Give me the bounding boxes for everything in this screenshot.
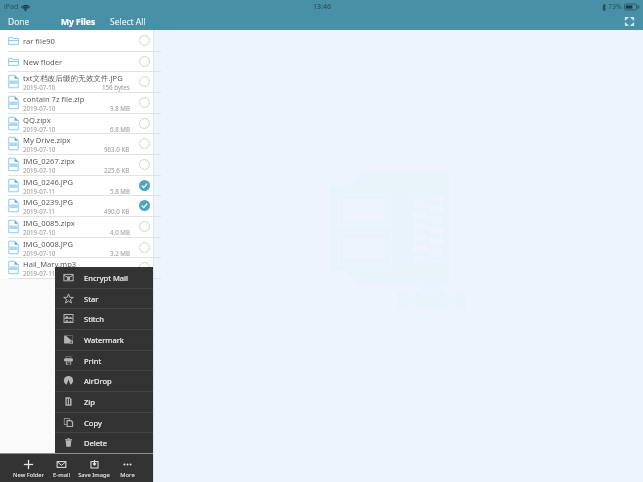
- staticText: AirDrop: [84, 376, 112, 386]
- staticText: 2019-07-11: [23, 187, 56, 195]
- button[interactable]: Star: [55, 288, 153, 309]
- staticText: 156 bytes: [102, 83, 130, 91]
- staticText: 4.9 MB: [110, 269, 130, 277]
- staticText: IMG_0239.JPG: [23, 197, 73, 207]
- staticText: Stitch: [84, 314, 104, 324]
- staticText: iPad: [4, 2, 19, 12]
- button[interactable]: New Folder: [9, 455, 47, 482]
- staticText: rar file90: [23, 36, 55, 46]
- staticText: 73%: [608, 2, 622, 12]
- staticText: contain 7z file.zip: [23, 94, 85, 104]
- button[interactable]: contain 7z file.zip: [0, 92, 153, 113]
- staticText: 2019-07-10: [23, 166, 56, 174]
- staticText: 225.6 KB: [104, 166, 130, 174]
- button[interactable]: My Drive.zipx: [0, 133, 153, 154]
- staticText: 6.8 MB: [110, 125, 130, 133]
- button[interactable]: txt文档改后缀的无效文件.JPG: [0, 71, 153, 92]
- staticText: My Drive.zipx: [23, 135, 71, 145]
- staticText: IMG_0008.JPG: [23, 239, 73, 249]
- button[interactable]: Save Image: [75, 455, 113, 482]
- button[interactable]: More: [108, 455, 146, 482]
- staticText: Copy: [84, 418, 102, 428]
- staticText: 4.0 MB: [110, 228, 130, 236]
- staticText: 9.8 MB: [110, 104, 130, 112]
- staticText: Zip: [84, 397, 95, 407]
- button[interactable]: Watermark: [55, 329, 153, 350]
- button[interactable]: Copy: [55, 412, 153, 433]
- button[interactable]: Encrypt Mail: [55, 267, 153, 288]
- staticText: Save Image: [78, 471, 110, 479]
- button[interactable]: New floder: [0, 51, 153, 72]
- button[interactable]: rar file90: [0, 30, 153, 51]
- button[interactable]: Stitch: [55, 308, 153, 329]
- staticText: 3.2 MB: [110, 249, 130, 257]
- staticText: My Files: [61, 16, 96, 28]
- staticText: Select All: [110, 16, 146, 28]
- staticText: 2019-07-10: [23, 145, 56, 153]
- staticText: New floder: [23, 57, 63, 67]
- staticText: More: [120, 471, 135, 479]
- staticText: Watermark: [84, 335, 124, 345]
- staticText: Star: [84, 294, 99, 304]
- button[interactable]: IMG_0239.JPG: [0, 195, 153, 216]
- button[interactable]: E-mail: [42, 455, 80, 482]
- staticText: Encrypt Mail: [84, 273, 129, 283]
- staticText: Done: [8, 16, 30, 28]
- staticText: E-mail: [53, 471, 70, 479]
- staticText: 5.8 MB: [110, 187, 130, 195]
- button[interactable]: QQ.zipx: [0, 113, 153, 134]
- staticText: 490.0 KB: [104, 207, 130, 215]
- staticText: IMG_0085.zipx: [23, 218, 75, 228]
- staticText: 2019-07-10: [23, 125, 56, 133]
- staticText: 2019-07-11: [23, 207, 56, 215]
- button[interactable]: Expand screen: [624, 16, 635, 27]
- button[interactable]: IMG_0246.JPG: [0, 175, 153, 196]
- staticText: Delete: [84, 438, 108, 448]
- button[interactable]: Delete: [55, 432, 153, 453]
- button[interactable]: IMG_0008.JPG: [0, 237, 153, 258]
- button[interactable]: IMG_0267.zipx: [0, 154, 153, 175]
- staticText: Print: [84, 356, 102, 366]
- staticText: txt文档改后缀的无效文件.JPG: [23, 73, 123, 83]
- staticText: 2019-07-11: [23, 269, 56, 277]
- staticText: IMG_0267.zipx: [23, 156, 75, 166]
- staticText: 2019-07-10: [23, 83, 56, 91]
- button[interactable]: Hail_Mary.mp3: [0, 257, 153, 278]
- staticText: New Folder: [13, 471, 44, 479]
- staticText: 2019-07-10: [23, 228, 56, 236]
- button[interactable]: IMG_0085.zipx: [0, 216, 153, 237]
- button[interactable]: Zip: [55, 391, 153, 412]
- staticText: 13:46: [313, 2, 331, 12]
- staticText: 2019-07-10: [23, 104, 56, 112]
- staticText: QQ.zipx: [23, 115, 51, 125]
- staticText: Hail_Mary.mp3: [23, 259, 77, 269]
- staticText: 963.0 KB: [104, 145, 130, 153]
- staticText: 2019-07-10: [23, 249, 56, 257]
- button[interactable]: Print: [55, 350, 153, 371]
- button[interactable]: Select All: [104, 14, 153, 30]
- staticText: IMG_0246.JPG: [23, 177, 73, 187]
- button[interactable]: AirDrop: [55, 370, 153, 391]
- button[interactable]: Done: [0, 14, 36, 30]
